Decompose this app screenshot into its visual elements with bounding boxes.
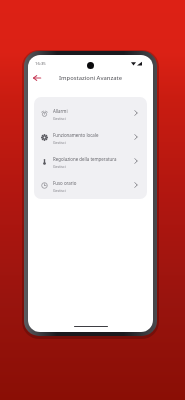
button[interactable]: Allarmi <box>34 100 147 124</box>
staticText: Impostazioni Avanzate <box>59 74 123 82</box>
staticText: Fuso orario <box>53 180 77 186</box>
staticText: Gestisci <box>53 164 66 169</box>
button[interactable]: Back <box>30 71 44 85</box>
staticText: Gestisci <box>53 116 66 121</box>
button[interactable]: Funzionamento locale <box>34 124 147 148</box>
button[interactable]: Fuso orario <box>34 172 147 196</box>
staticText: Funzionamento locale <box>53 132 99 138</box>
staticText: 16:35 <box>35 61 46 67</box>
staticText: Gestisci <box>53 188 66 193</box>
staticText: Allarmi <box>53 108 68 114</box>
staticText: Regolazione della temperatura <box>53 156 117 162</box>
button[interactable]: Regolazione della temperatura <box>34 148 147 172</box>
staticText: Gestisci <box>53 140 66 145</box>
